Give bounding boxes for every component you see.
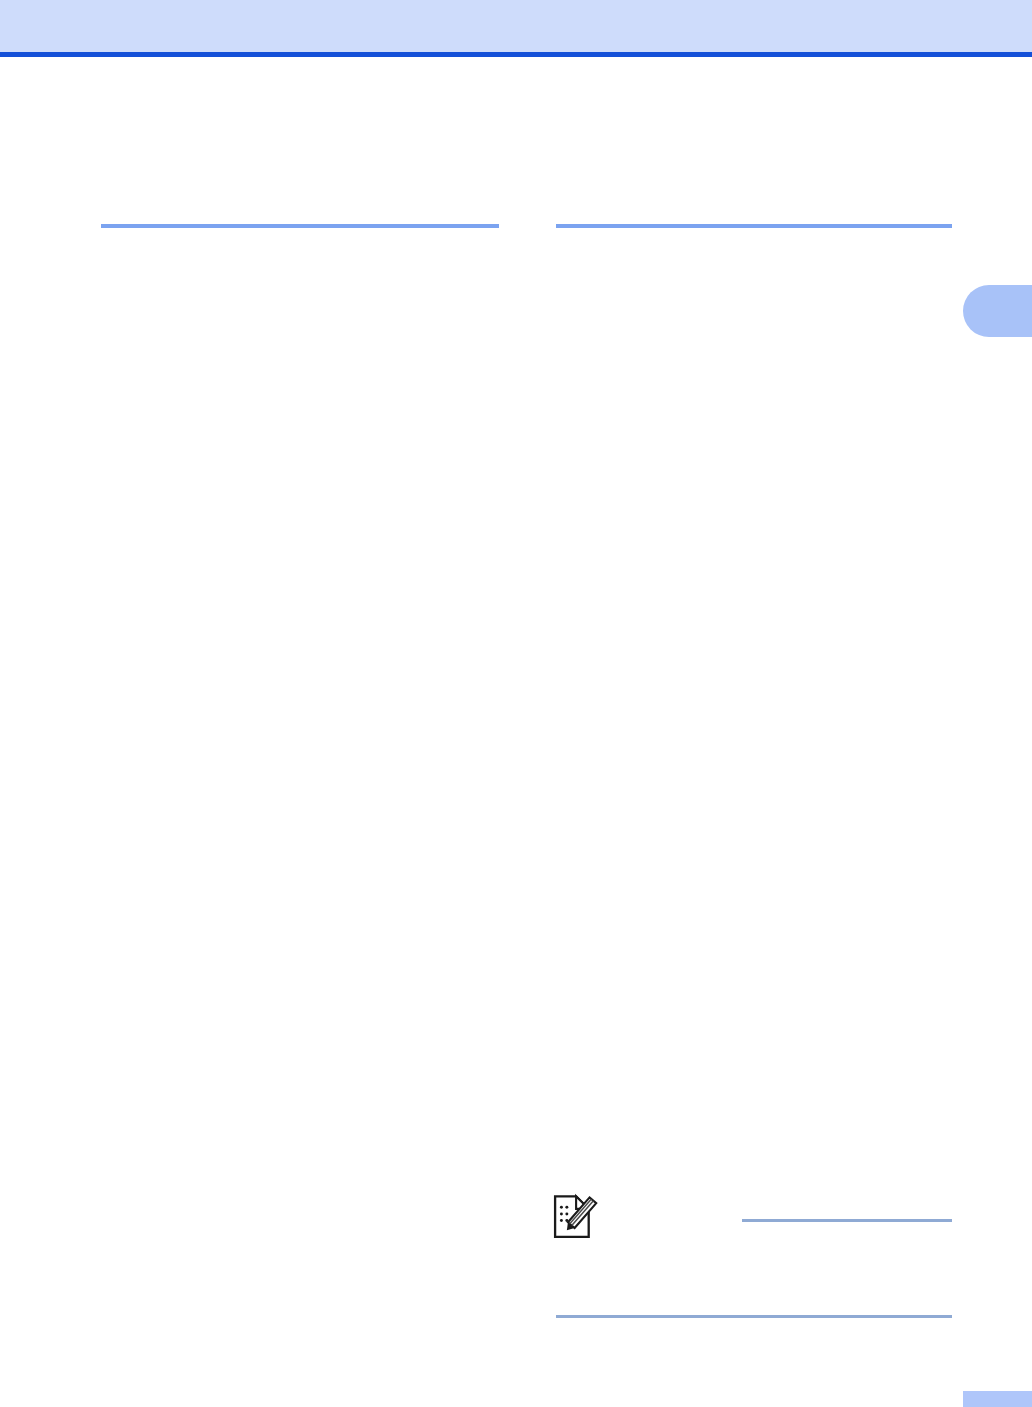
button[interactable]: Chapter tab	[963, 285, 1032, 337]
